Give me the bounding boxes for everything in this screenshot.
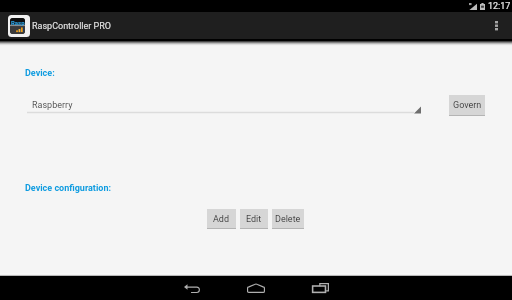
button[interactable]: Home (224, 276, 288, 300)
button[interactable]: Add (207, 209, 236, 229)
staticText: Delete (275, 214, 301, 225)
button[interactable]: Edit (240, 209, 268, 229)
button[interactable]: Back (160, 276, 224, 300)
staticText: RaspController PRO (32, 21, 111, 32)
staticText: Device: (25, 68, 55, 79)
staticText: Rasp (11, 19, 25, 26)
staticText: Edit (246, 214, 262, 225)
staticText: Device configuration: (25, 183, 111, 194)
button[interactable]: Govern (449, 95, 485, 116)
staticText: Raspberry (32, 100, 73, 111)
staticText: Add (213, 214, 230, 225)
button[interactable]: Raspberry (27, 96, 421, 114)
button[interactable]: Delete (272, 209, 304, 229)
button[interactable]: More options (490, 12, 512, 39)
button[interactable]: Recent apps (288, 276, 352, 300)
staticText: Govern (453, 100, 482, 111)
staticText: 12:17 (488, 1, 511, 12)
